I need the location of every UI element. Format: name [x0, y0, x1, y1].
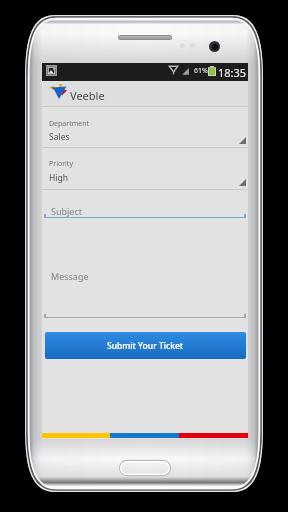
button[interactable] [42, 195, 248, 219]
staticText: 18:35 [218, 65, 247, 80]
staticText: Sales [49, 131, 70, 143]
staticText: Message [51, 270, 89, 282]
staticText: High [49, 172, 68, 184]
staticText: Priority [49, 159, 73, 169]
staticText: 61% [194, 66, 208, 76]
staticText: Subject [51, 205, 83, 217]
staticText: Veeble [70, 88, 105, 103]
staticText: Department [49, 119, 90, 129]
button[interactable] [42, 116, 248, 150]
button[interactable]: Home [119, 460, 171, 476]
staticText: Submit Your Ticket [107, 340, 184, 352]
button[interactable] [42, 219, 248, 318]
button[interactable] [42, 156, 248, 192]
button[interactable]: Submit Your Ticket [45, 332, 246, 359]
